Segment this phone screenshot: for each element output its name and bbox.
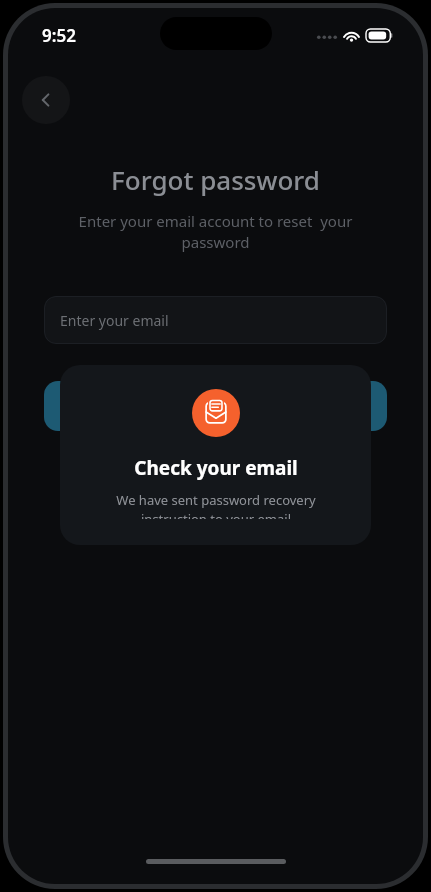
staticText: Check your email [134, 455, 298, 481]
button[interactable]: Enter your email [44, 296, 387, 344]
staticText: Enter your email [60, 311, 169, 330]
staticText: Forgot password [8, 162, 423, 197]
staticText: Enter your email account to reset your p… [32, 211, 399, 253]
staticText: We have sent password recovery instructi… [116, 491, 316, 519]
staticText: 9:52 [42, 24, 76, 47]
button[interactable] [44, 381, 387, 431]
button[interactable]: Back [22, 76, 70, 124]
